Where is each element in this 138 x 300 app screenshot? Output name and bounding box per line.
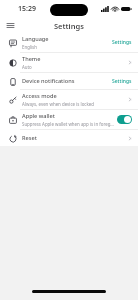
staticText: Language [22,35,49,43]
staticText: Device notifications [22,77,75,85]
staticText: Access mode [22,92,57,100]
button[interactable]: Settings [112,39,132,46]
button[interactable]: Device notifications [0,73,138,89]
staticText: Auto [22,64,32,70]
staticText: Apple wallet [22,112,55,120]
button[interactable]: Settings [112,78,132,85]
button[interactable]: Reset [0,130,138,146]
staticText: 15:29 [18,4,36,14]
button[interactable]: Theme [0,53,138,72]
staticText: Suppress Apple wallet when app is in for… [22,121,114,127]
staticText: English [22,44,37,50]
button[interactable]: Language [0,33,138,52]
button[interactable]: Menu [4,19,17,32]
button[interactable]: Apple wallet [0,110,138,129]
staticText: Reset [22,134,37,142]
staticText: Theme [22,55,41,63]
staticText: Always, even when device is locked [22,101,94,107]
staticText: Settings [54,21,84,31]
button[interactable]: Apple wallet toggle [117,115,132,124]
button[interactable]: Access mode [0,90,138,109]
